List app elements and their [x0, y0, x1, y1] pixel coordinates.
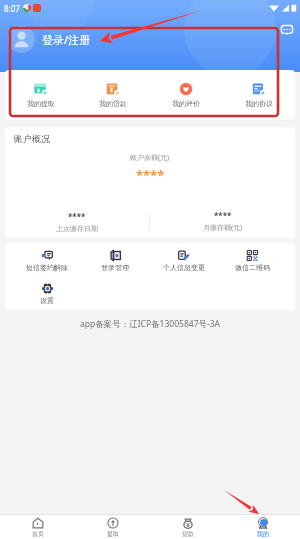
staticText: 设置 [40, 296, 54, 305]
button[interactable]: 我的评价 [149, 70, 222, 120]
other: 提取 [107, 517, 119, 529]
other: 我的 [257, 517, 269, 529]
staticText: 个人信息变更 [163, 263, 205, 272]
staticText: 我的贷款 [99, 99, 127, 108]
staticText: 首页 [32, 530, 44, 538]
staticText: **** [214, 210, 232, 221]
staticText: 登录管理 [101, 263, 129, 272]
staticText: 登录/注册 [42, 32, 91, 47]
button[interactable]: 设置 [13, 283, 81, 305]
button[interactable]: 消息 [280, 23, 294, 37]
staticText: 贷款 [182, 530, 194, 538]
staticText: 月缴存额(元) [203, 223, 243, 233]
staticText: app备案号：辽ICP备13005847号-3A [0, 318, 300, 330]
staticText: 我的提取 [27, 99, 55, 108]
button[interactable]: 我的 [225, 515, 300, 539]
button[interactable]: 我的协议 [222, 70, 295, 120]
button[interactable]: 登录管理 [81, 250, 149, 272]
staticText: 上次缴存日期 [56, 224, 98, 233]
button[interactable]: 个人信息变更 [149, 250, 218, 272]
staticText: 8:07 [4, 3, 20, 14]
staticText: 账户余额(元) [130, 153, 170, 163]
button[interactable]: 贷款 [150, 515, 225, 539]
staticText: 我的 [257, 530, 269, 538]
staticText: 账户概况 [14, 133, 50, 144]
button[interactable]: 我的贷款 [77, 70, 149, 120]
button[interactable]: 提取 [75, 515, 150, 539]
button[interactable]: 登录/注册 [8, 26, 91, 53]
staticText: 短信签约解除 [26, 263, 68, 272]
other: 首页 [32, 517, 44, 529]
staticText: 微信二维码 [235, 263, 270, 272]
button[interactable]: 短信签约解除 [13, 250, 81, 272]
staticText: **** [136, 166, 165, 184]
staticText: 我的评价 [172, 99, 200, 108]
other: 贷款 [182, 517, 194, 529]
button[interactable]: 微信二维码 [218, 250, 287, 272]
button[interactable]: 我的提取 [5, 70, 77, 120]
staticText: 提取 [107, 530, 119, 538]
button[interactable]: 首页 [0, 515, 75, 539]
staticText: 我的协议 [245, 99, 273, 108]
staticText: **** [68, 211, 86, 222]
